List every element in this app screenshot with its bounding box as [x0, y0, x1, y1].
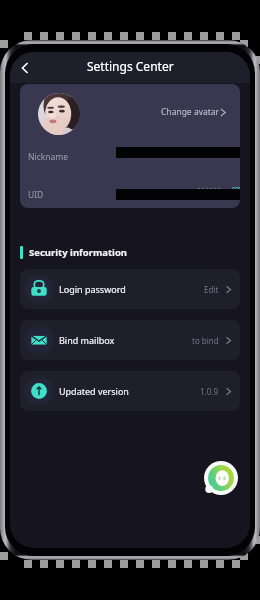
button[interactable]: Login password [20, 269, 240, 309]
button[interactable]: Change avatar [150, 101, 226, 123]
button[interactable]: Bind mailbox [20, 320, 240, 360]
staticText: Bind mailbox [59, 334, 115, 346]
staticText: Login password [59, 283, 126, 295]
staticText: Nickname [28, 151, 69, 163]
staticText: - - - - - - [198, 183, 221, 193]
staticText: Edit [204, 284, 219, 295]
staticText: Security information [29, 246, 127, 259]
staticText: copy [232, 184, 240, 193]
button[interactable]: Back [15, 58, 35, 78]
staticText: Settings Center [87, 58, 174, 74]
staticText: UID [28, 189, 44, 201]
staticText: to bind [192, 335, 219, 346]
button[interactable]: AI assistant [204, 461, 238, 495]
staticText: Updated version [59, 385, 129, 397]
staticText: 1.0.9 [200, 386, 219, 397]
button[interactable]: Updated version [20, 371, 240, 411]
staticText: Change avatar [161, 106, 220, 118]
